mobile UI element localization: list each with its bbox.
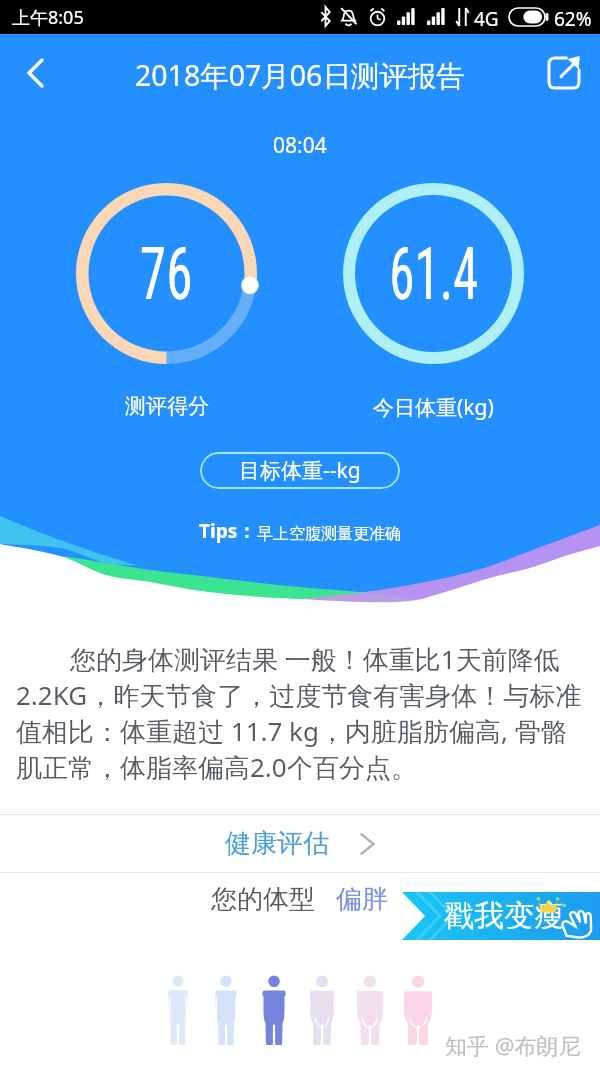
button[interactable]: Share (542, 50, 588, 96)
staticText: 您的身体测评结果 一般！体重比1天前降低 (16, 641, 560, 677)
staticText: 测评得分 (125, 393, 209, 419)
staticText: 上午8:05 (12, 5, 84, 30)
staticText: 知乎 @布朗尼 (445, 1030, 581, 1060)
staticText: 肌正常，体脂率偏高2.0个百分点。 (16, 749, 417, 785)
staticText: 早上空腹测量更准确 (257, 524, 401, 544)
staticText: 您的体型 (211, 883, 315, 916)
button[interactable]: Back (14, 52, 56, 94)
staticText: 08:04 (273, 131, 327, 160)
staticText: 戳我变瘦 (444, 897, 564, 935)
staticText: 2.2KG，昨天节食了，过度节食有害身体！与标准 (16, 677, 582, 713)
staticText: 61.4 (389, 231, 479, 317)
staticText: 今日体重(kg) (373, 393, 494, 422)
staticText: 4G (474, 6, 499, 32)
button[interactable]: 健康评估 (0, 815, 600, 872)
staticText: 偏胖 (336, 883, 388, 916)
staticText: Tips： (199, 518, 257, 544)
staticText: 目标体重--kg (239, 456, 361, 485)
button[interactable]: 戳我变瘦 (402, 892, 600, 940)
staticText: 2018年07月06日测评报告 (135, 56, 465, 95)
staticText: 62% (554, 6, 592, 32)
staticText: 健康评估 (225, 827, 329, 860)
staticText: 76 (140, 231, 193, 317)
staticText: 值相比：体重超过 11.7 kg，内脏脂肪偏高, 骨骼 (16, 713, 567, 749)
button[interactable]: 目标体重--kg (200, 452, 400, 489)
